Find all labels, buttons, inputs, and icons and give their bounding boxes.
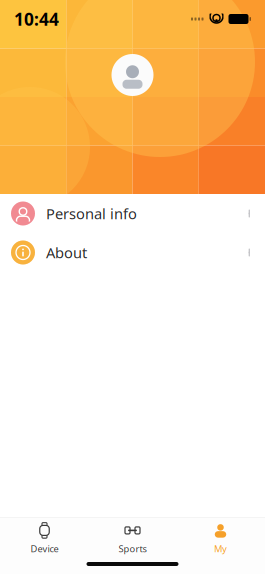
staticText: 10:44 (14, 7, 59, 30)
staticText: About (46, 243, 87, 262)
button[interactable]: My (176, 519, 264, 559)
staticText: Device (30, 542, 58, 555)
staticText: Sports (118, 542, 146, 555)
button[interactable]: About (0, 233, 265, 272)
button[interactable]: Device (0, 519, 88, 559)
staticText: My (214, 542, 227, 555)
button[interactable]: Sports (88, 519, 176, 559)
staticText: Personal info (46, 204, 137, 223)
button[interactable]: Personal info (0, 194, 265, 233)
